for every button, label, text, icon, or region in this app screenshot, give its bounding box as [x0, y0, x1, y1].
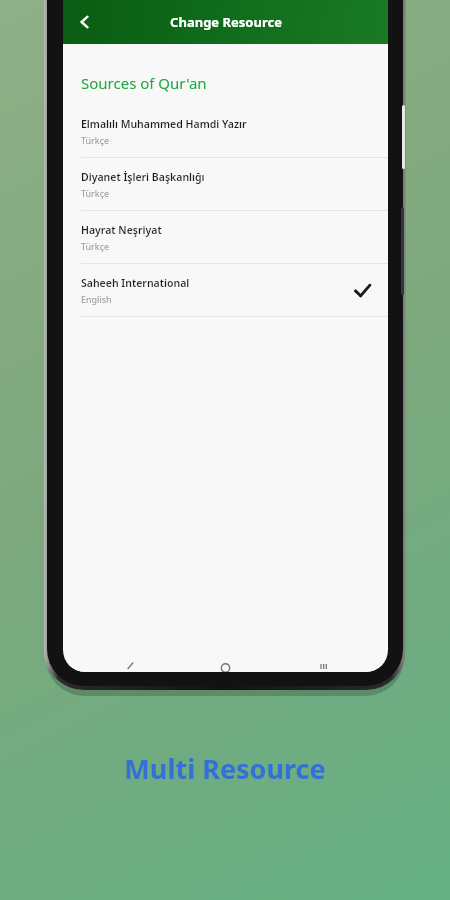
staticText: Hayrat Neşriyat [81, 223, 162, 237]
button[interactable]: Diyanet İşleri Başkanlığı [63, 158, 388, 210]
staticText: English [81, 293, 112, 305]
button[interactable]: Back [67, 4, 103, 40]
staticText: Türkçe [81, 134, 110, 146]
staticText: Sources of Qur'an [81, 73, 207, 93]
staticText: Türkçe [81, 187, 110, 199]
staticText: Multi Resource [124, 750, 326, 787]
staticText: Diyanet İşleri Başkanlığı [81, 170, 205, 184]
button[interactable]: Hayrat Neşriyat [63, 211, 388, 263]
staticText: Change Resource [170, 13, 282, 31]
button[interactable]: Saheeh International [63, 264, 388, 316]
button[interactable]: Elmalılı Muhammed Hamdi Yazır [63, 105, 388, 157]
staticText: Saheeh International [81, 276, 190, 290]
staticText: Türkçe [81, 240, 110, 252]
staticText: Elmalılı Muhammed Hamdi Yazır [81, 117, 247, 131]
